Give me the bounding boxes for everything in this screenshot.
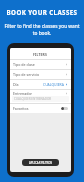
button[interactable]: Favoritos <box>13 104 68 113</box>
staticText: FILTERS <box>33 52 48 57</box>
button[interactable]: Día <box>13 80 68 89</box>
staticText: Tipo de servicio <box>13 72 40 77</box>
staticText: Favoritos <box>13 106 29 111</box>
button[interactable]: CUALQUIER ENTRENADOR <box>12 96 69 102</box>
staticText: Tipo de clase <box>13 62 35 67</box>
staticText: Día <box>13 82 19 87</box>
staticText: CUALQUIER ENTRENADOR <box>14 97 52 101</box>
staticText: Entrenador <box>13 91 33 96</box>
staticText: APLICAR FILTROS <box>29 161 53 165</box>
button[interactable]: Entrenador <box>13 90 68 96</box>
staticText: Filter to find the classes you want to b… <box>3 23 81 37</box>
staticText: BOOK YOUR CLASSES <box>0 8 84 16</box>
button[interactable]: APLICAR FILTROS <box>22 159 59 166</box>
button[interactable]: Tipo de servicio <box>13 70 68 79</box>
staticText: CUALQUIERA <box>43 82 64 87</box>
button[interactable]: Tipo de clase <box>13 60 68 69</box>
